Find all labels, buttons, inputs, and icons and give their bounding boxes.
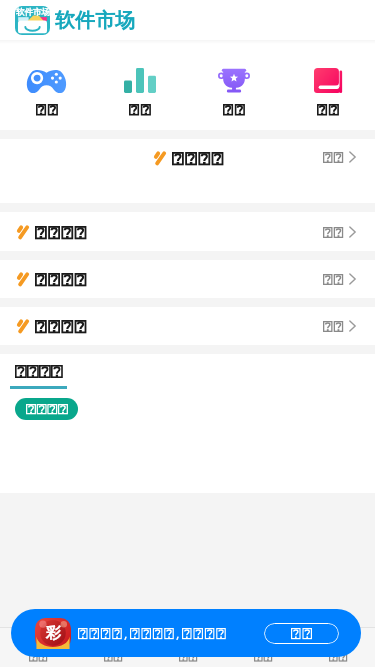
button[interactable]: 管理: [225, 652, 300, 667]
button[interactable]: [15, 398, 78, 420]
button[interactable]: 更多: [0, 212, 375, 251]
button[interactable]: 更多: [323, 273, 356, 285]
staticText: 软件市场: [16, 7, 50, 18]
button[interactable]: 更多: [0, 139, 375, 203]
staticText: 彩: [46, 624, 61, 643]
button[interactable]: 我的: [300, 652, 375, 667]
button[interactable]: 更多: [323, 226, 356, 238]
button[interactable]: 排行: [150, 652, 225, 667]
button[interactable]: [10, 365, 67, 389]
button[interactable]: 教育: [281, 44, 375, 116]
button[interactable]: 软件市场: [15, 6, 135, 35]
button[interactable]: 更多: [323, 320, 356, 332]
staticText: 软件市场: [55, 8, 135, 33]
button[interactable]: 分类: [75, 652, 150, 667]
button[interactable]: 首页: [0, 652, 75, 667]
staticText: ,: [176, 624, 180, 642]
button[interactable]: 彩: [11, 609, 361, 657]
button[interactable]: 必备: [187, 44, 281, 116]
staticText: ,: [124, 624, 128, 642]
button[interactable]: 更多: [0, 260, 375, 298]
button[interactable]: 更多: [323, 151, 356, 163]
button[interactable]: 排行: [93, 44, 187, 116]
button[interactable]: [264, 623, 339, 644]
button[interactable]: 游戏: [0, 44, 93, 116]
button[interactable]: 更多: [0, 307, 375, 345]
